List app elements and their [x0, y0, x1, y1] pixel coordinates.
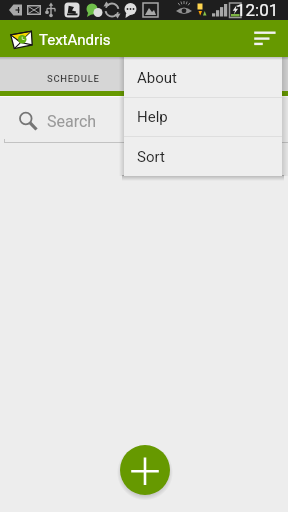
staticText: Sort	[137, 148, 165, 166]
staticText: TextAndris	[39, 31, 111, 49]
button[interactable]: Search	[17, 109, 39, 131]
staticText: SCHEDULE	[47, 73, 100, 84]
button[interactable]: Help	[124, 98, 282, 136]
button[interactable]: About	[124, 57, 282, 97]
staticText: 12:01	[236, 0, 279, 20]
button[interactable]: SCHEDULE	[0, 57, 288, 91]
button[interactable]: Sort	[124, 137, 282, 176]
button[interactable]: Sort	[245, 20, 285, 57]
staticText: Search	[47, 112, 97, 131]
staticText: About	[137, 69, 177, 87]
staticText: Help	[137, 108, 168, 126]
button[interactable]: Add	[120, 445, 170, 495]
